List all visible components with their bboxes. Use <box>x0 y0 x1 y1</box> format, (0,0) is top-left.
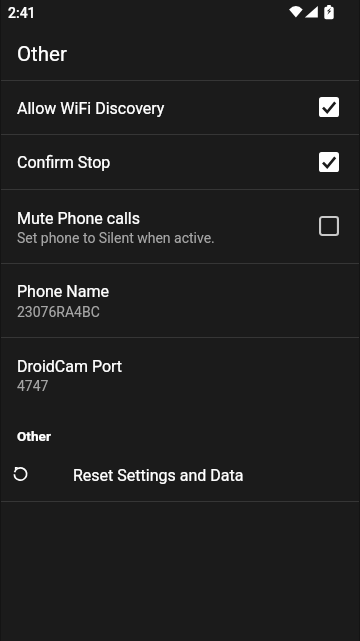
button[interactable] <box>0 264 360 337</box>
staticText: Confirm Stop <box>17 153 111 172</box>
staticText: Reset Settings and Data <box>73 466 244 485</box>
staticText: Mute Phone calls <box>17 209 140 228</box>
other: Reset Settings and Data <box>11 464 31 484</box>
staticText: DroidCam Port <box>17 357 123 376</box>
staticText: Allow WiFi Discovery <box>17 99 165 118</box>
staticText: Other <box>17 42 67 66</box>
staticText: Other <box>17 428 51 444</box>
button[interactable] <box>0 190 360 263</box>
button[interactable] <box>0 81 360 134</box>
staticText: 23076RA4BC <box>17 304 100 320</box>
button[interactable] <box>0 135 360 189</box>
staticText: 2:41 <box>8 5 36 21</box>
staticText: Set phone to Silent when active. <box>17 230 215 246</box>
staticText: Phone Name <box>17 282 109 301</box>
button[interactable] <box>0 451 360 501</box>
staticText: 4747 <box>17 378 49 394</box>
button[interactable] <box>0 338 360 411</box>
